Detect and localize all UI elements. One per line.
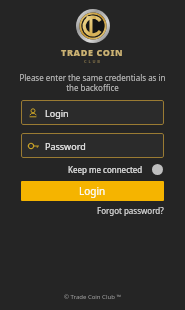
button[interactable]: Login [21, 181, 164, 201]
staticText: Login [45, 107, 69, 119]
staticText: Password [45, 140, 86, 152]
staticText: © Trade Coin Club ™ [0, 293, 185, 301]
staticText: Forgot password? [97, 205, 164, 216]
staticText: C L U B [84, 59, 101, 64]
button[interactable]: Password [21, 133, 164, 158]
button[interactable]: Keep me connected [68, 163, 164, 175]
button[interactable]: Login [21, 100, 164, 125]
staticText: Please enter the same credentials as in … [18, 72, 167, 93]
other: Trade Coin Club logo [76, 9, 110, 43]
staticText: Keep me connected [68, 164, 143, 175]
staticText: Login [79, 184, 106, 198]
button[interactable]: Forgot password? [97, 205, 164, 216]
staticText: TRADE COIN [61, 46, 124, 58]
